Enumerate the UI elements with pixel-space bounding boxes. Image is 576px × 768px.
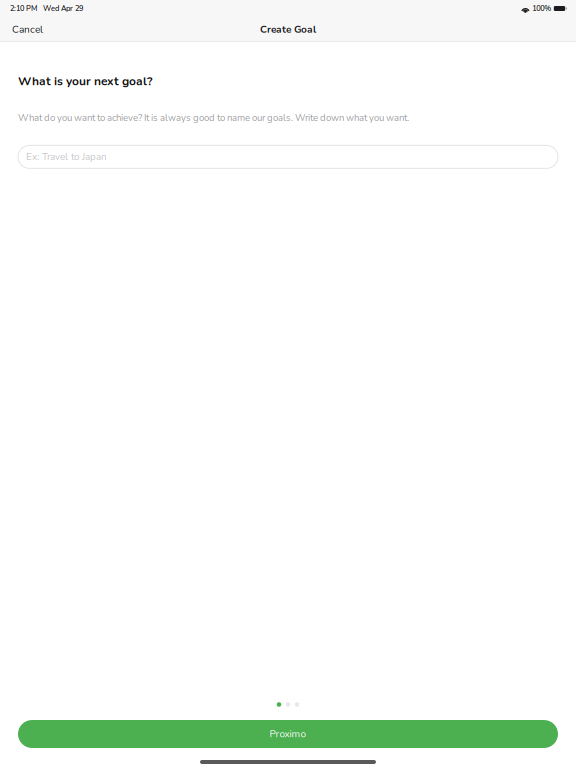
staticText: Ex: Travel to Japan [26,150,107,164]
button[interactable]: Cancel [0,17,55,42]
staticText: 100% [532,3,551,14]
staticText: Wed Apr 29 [43,3,83,14]
button[interactable]: Ex: Travel to Japan [18,145,558,168]
staticText: Proximo [269,727,306,741]
staticText: What is your next goal? [18,73,153,89]
staticText: Cancel [12,23,43,36]
staticText: 2:10 PM [10,3,37,14]
staticText: Create Goal [260,23,316,36]
staticText: What do you want to achieve? It is alway… [18,111,409,124]
button[interactable]: Proximo [18,720,558,748]
